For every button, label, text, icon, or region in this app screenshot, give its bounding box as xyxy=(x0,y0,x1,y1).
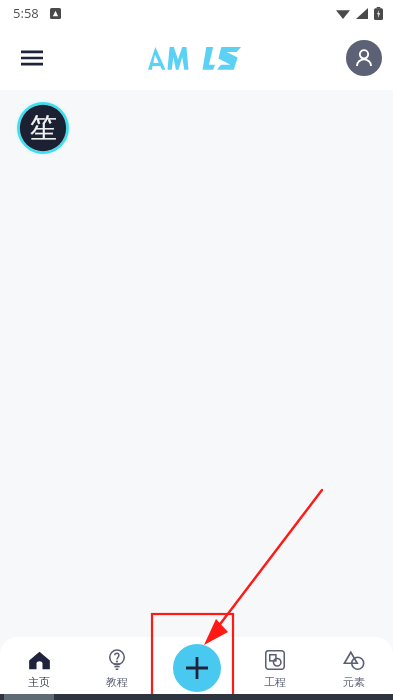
button[interactable]: Profile xyxy=(346,40,382,76)
button[interactable]: 教程 xyxy=(78,637,156,700)
staticText: 笙 xyxy=(30,111,57,145)
staticText: 教程 xyxy=(106,675,128,689)
staticText: 5:58 xyxy=(13,4,39,22)
button[interactable]: User avatar xyxy=(14,99,72,157)
button[interactable]: 元素 xyxy=(314,637,393,700)
button[interactable]: 主页 xyxy=(0,637,78,700)
staticText: 元素 xyxy=(343,675,365,689)
button[interactable]: Menu xyxy=(8,34,56,82)
staticText: 主页 xyxy=(28,675,50,689)
button[interactable]: 工程 xyxy=(235,637,314,700)
staticText: 工程 xyxy=(264,675,286,689)
button[interactable]: Add xyxy=(173,644,221,692)
